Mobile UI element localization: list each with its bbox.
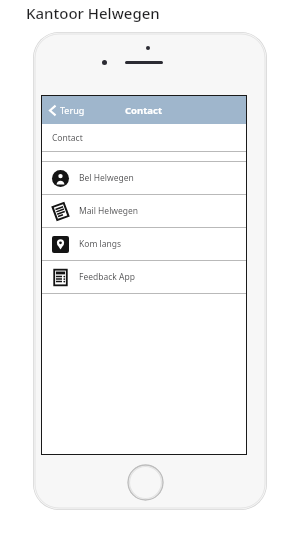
button[interactable]: Mail Helwegen bbox=[42, 195, 246, 227]
staticText: Mail Helwegen bbox=[79, 205, 139, 217]
staticText: Contact bbox=[52, 132, 83, 144]
staticText: Kom langs bbox=[79, 238, 122, 250]
staticText: Contact bbox=[125, 104, 163, 117]
button[interactable]: Terug bbox=[47, 100, 87, 120]
button[interactable]: Kom langs bbox=[42, 228, 246, 260]
button[interactable]: Bel Helwegen bbox=[42, 162, 246, 194]
staticText: Feedback App bbox=[79, 271, 135, 283]
button[interactable]: Feedback App bbox=[42, 261, 246, 293]
other: Home bbox=[127, 464, 164, 501]
button[interactable]: Contact bbox=[42, 124, 246, 151]
staticText: Kantoor Helwegen bbox=[26, 3, 160, 23]
staticText: Bel Helwegen bbox=[79, 172, 134, 184]
staticText: Terug bbox=[60, 104, 85, 116]
